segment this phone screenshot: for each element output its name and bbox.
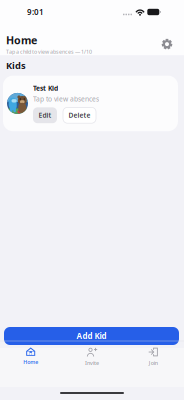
staticText: Delete — [68, 111, 90, 120]
staticText: Edit — [38, 111, 51, 120]
staticText: Add Kid — [76, 331, 106, 341]
staticText: Tap to view absences — [33, 94, 99, 103]
button[interactable]: Test Kid — [3, 76, 178, 131]
staticText: Home — [23, 358, 38, 366]
staticText: 9:01 — [27, 7, 44, 17]
staticText: Invite — [85, 359, 99, 366]
staticText: Tap a child to view absences — 1/10 — [6, 48, 92, 55]
button[interactable]: Delete — [63, 107, 96, 123]
staticText: Test Kid — [33, 84, 58, 92]
button[interactable]: Edit — [33, 107, 57, 123]
staticText: Kids — [6, 59, 26, 72]
button[interactable]: Settings — [158, 35, 176, 53]
staticText: Join — [149, 359, 158, 366]
staticText: Home — [6, 33, 37, 47]
button[interactable]: Invite — [61, 341, 123, 386]
button[interactable]: Home — [0, 341, 61, 386]
button[interactable]: Add Kid — [4, 327, 179, 345]
button[interactable]: Join — [123, 341, 184, 386]
